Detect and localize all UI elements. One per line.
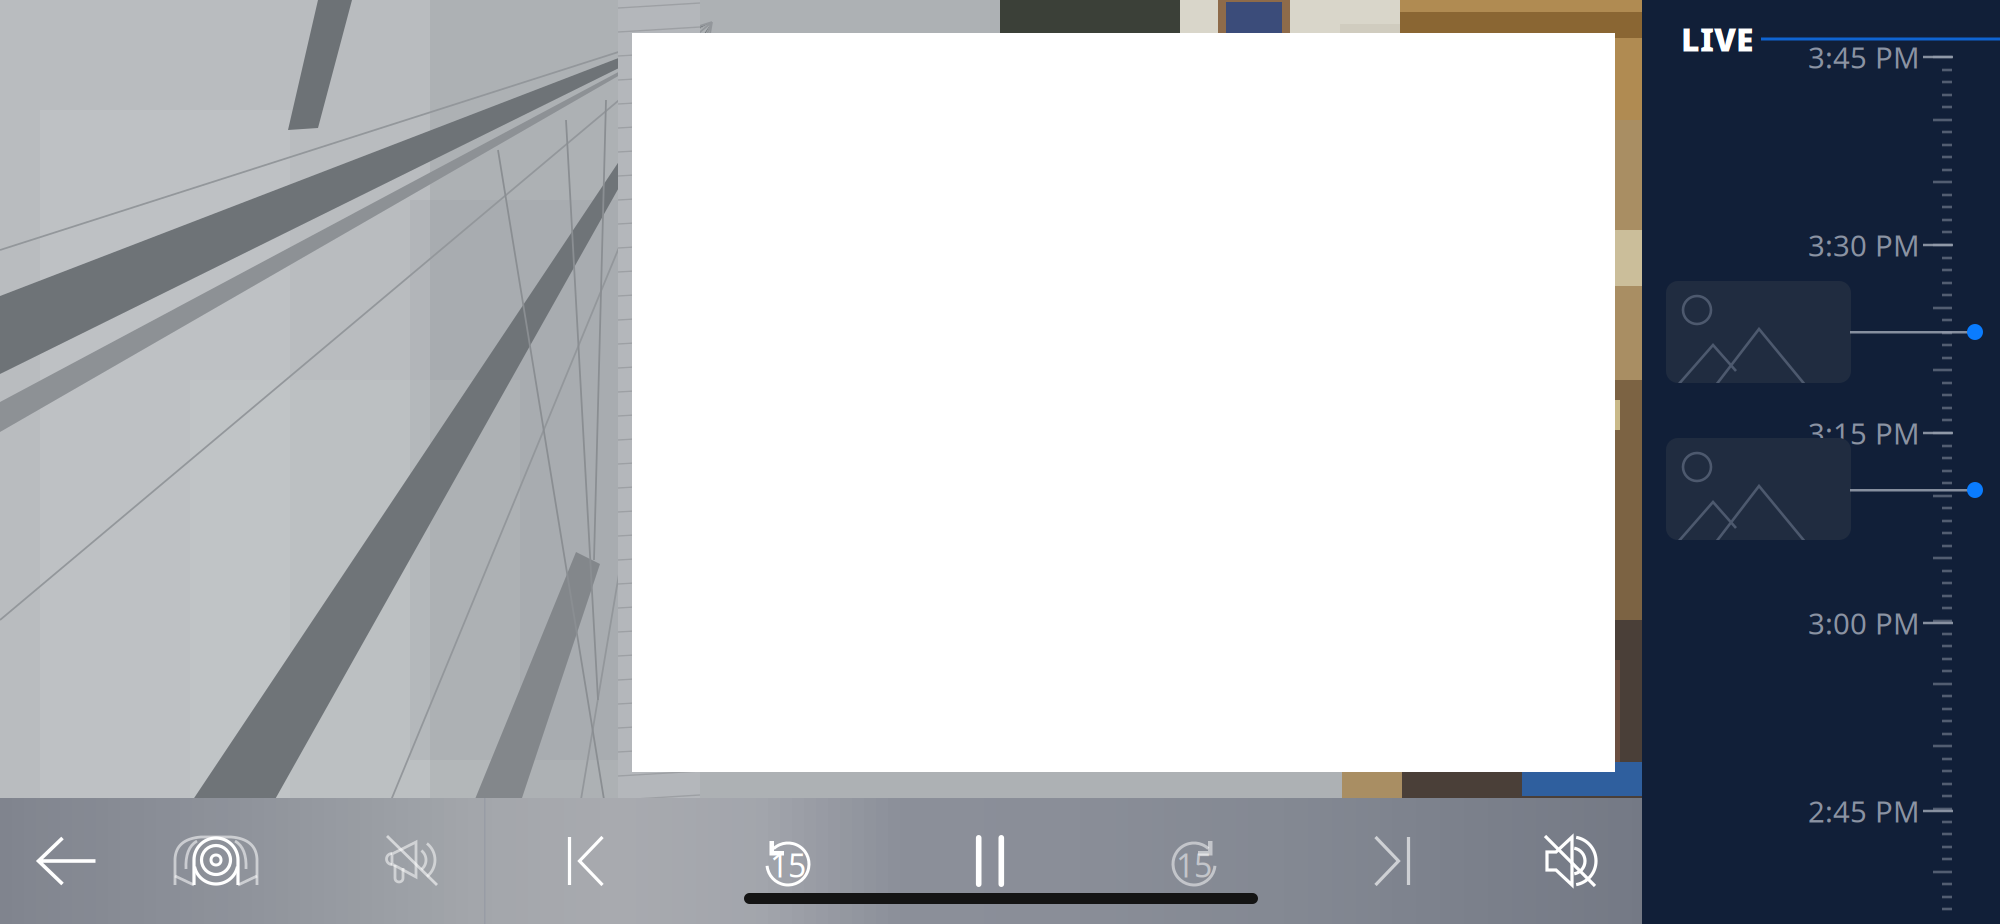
button[interactable]: Back <box>0 798 142 924</box>
staticText: 3:00 PM <box>1808 603 1920 642</box>
staticText: 3:45 PM <box>1808 37 1920 76</box>
staticText: 15 <box>1176 844 1212 886</box>
button[interactable]: Back 15 seconds <box>693 798 883 924</box>
staticText: 3:30 PM <box>1808 225 1920 264</box>
button[interactable]: Unmute <box>1495 798 1645 924</box>
button[interactable]: Forward 15 seconds <box>1099 798 1289 924</box>
button[interactable]: Talk <box>337 798 487 924</box>
button[interactable]: Recorded clip, 3:14 PM <box>1666 438 1851 540</box>
staticText: 3:15 PM <box>1808 413 1920 452</box>
button[interactable]: Pause <box>895 798 1085 924</box>
button[interactable]: Previous clip <box>501 798 671 924</box>
button[interactable]: Audio output <box>141 798 291 924</box>
button[interactable]: Recorded clip, 3:34 PM <box>1666 281 1851 383</box>
button[interactable]: Next clip <box>1307 798 1477 924</box>
staticText: 2:45 PM <box>1808 791 1920 830</box>
staticText: LIVE <box>1681 18 1754 60</box>
staticText: 15 <box>770 844 806 886</box>
